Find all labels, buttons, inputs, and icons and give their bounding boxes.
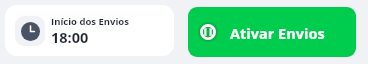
staticText: Ativar Envios xyxy=(230,24,325,44)
other: Pause xyxy=(200,24,216,40)
button[interactable]: Início dos Envios xyxy=(5,5,174,56)
staticText: Início dos Envios xyxy=(51,15,129,28)
staticText: 18:00 xyxy=(51,28,89,48)
button[interactable]: Pause xyxy=(188,7,356,57)
